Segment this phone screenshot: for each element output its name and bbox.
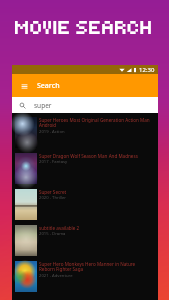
button[interactable]: subtitle available 2 [12,221,158,257]
button[interactable]: super [12,97,158,113]
staticText: 2020 - Thriller [39,195,67,201]
staticText: Super Hero Monkeys Hero Manner in Nature… [39,261,152,273]
staticText: 12:30 [139,66,155,74]
staticText: Super Heroes Most Original Generation Ac… [39,117,152,129]
staticText: 2015 - Drama [39,231,66,237]
staticText: super [34,101,52,110]
staticText: Super Dragon Wolf Season Man And Madness [39,153,138,159]
button[interactable]: Open navigation menu [17,79,31,93]
staticText: Search [37,81,60,91]
staticText: 2021 - Adventure [39,273,73,279]
staticText: Super Secret [39,189,67,195]
button[interactable]: Super Hero Monkeys Hero Manner in Nature… [12,257,158,293]
button[interactable]: Open navigation menu [12,74,158,97]
button[interactable]: Super Dragon Wolf Season Man And Madness [12,149,158,185]
button[interactable]: Super Heroes Most Original Generation Ac… [12,113,158,149]
staticText: 2019 - Action [39,129,65,135]
staticText: 2017 - Fantasy [39,159,68,165]
button[interactable]: Super Secret [12,185,158,221]
staticText: subtitle available 2 [39,225,80,231]
staticText: MOVIE SEARCH [15,16,154,39]
